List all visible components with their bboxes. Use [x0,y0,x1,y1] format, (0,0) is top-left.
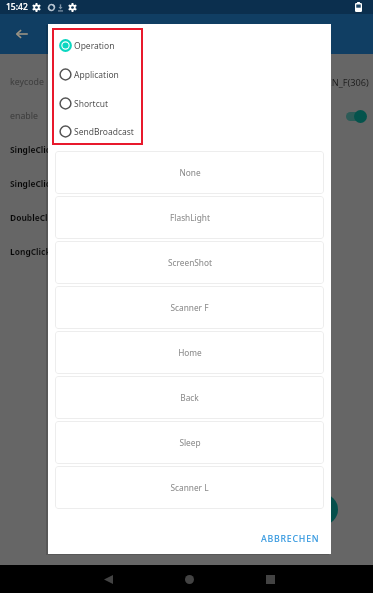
button[interactable]: Home [169,565,209,593]
staticText: Scanner F [170,302,209,313]
button[interactable]: SendBroadcast [59,118,143,145]
staticText: None [179,167,201,178]
button[interactable]: Back [88,565,128,593]
button[interactable]: Back [8,20,36,48]
staticText: SendBroadcast [74,126,134,138]
button[interactable]: Shortcut [59,89,143,118]
button[interactable]: Sleep [55,421,324,464]
staticText: Application [74,69,119,81]
staticText: ABBRECHEN [261,533,320,545]
button[interactable]: Home [55,331,324,374]
staticText: 15:42 [6,1,28,13]
button[interactable]: None [55,151,324,194]
staticText: SingleClick [10,178,56,189]
button[interactable]: FlashLight [55,196,324,239]
button[interactable]: Application [59,60,143,89]
staticText: SingleClick [10,144,56,155]
staticText: Home [178,347,202,358]
button[interactable]: Enable [346,110,367,123]
staticText: Back [180,392,199,403]
button[interactable]: Add [307,494,338,525]
button[interactable]: Scanner F [55,286,324,329]
staticText: enable [10,110,38,122]
button[interactable]: Recents [250,565,290,593]
staticText: ScreenShot [168,257,212,268]
staticText: FlashLight [170,212,210,223]
button[interactable]: Operation [59,31,143,60]
staticText: Sleep [179,437,201,448]
staticText: keycode [10,76,44,88]
button[interactable]: ABBRECHEN [255,527,326,551]
staticText: Shortcut [74,98,109,110]
staticText: DoubleClick [10,212,60,223]
staticText: WIN_F(306) [320,76,369,89]
staticText: LongClick [10,246,51,257]
button[interactable]: Back [55,376,324,419]
button[interactable]: ScreenShot [55,241,324,284]
staticText: Scanner L [170,482,209,493]
button[interactable]: Scanner L [55,466,324,509]
staticText: Operation [74,40,115,52]
